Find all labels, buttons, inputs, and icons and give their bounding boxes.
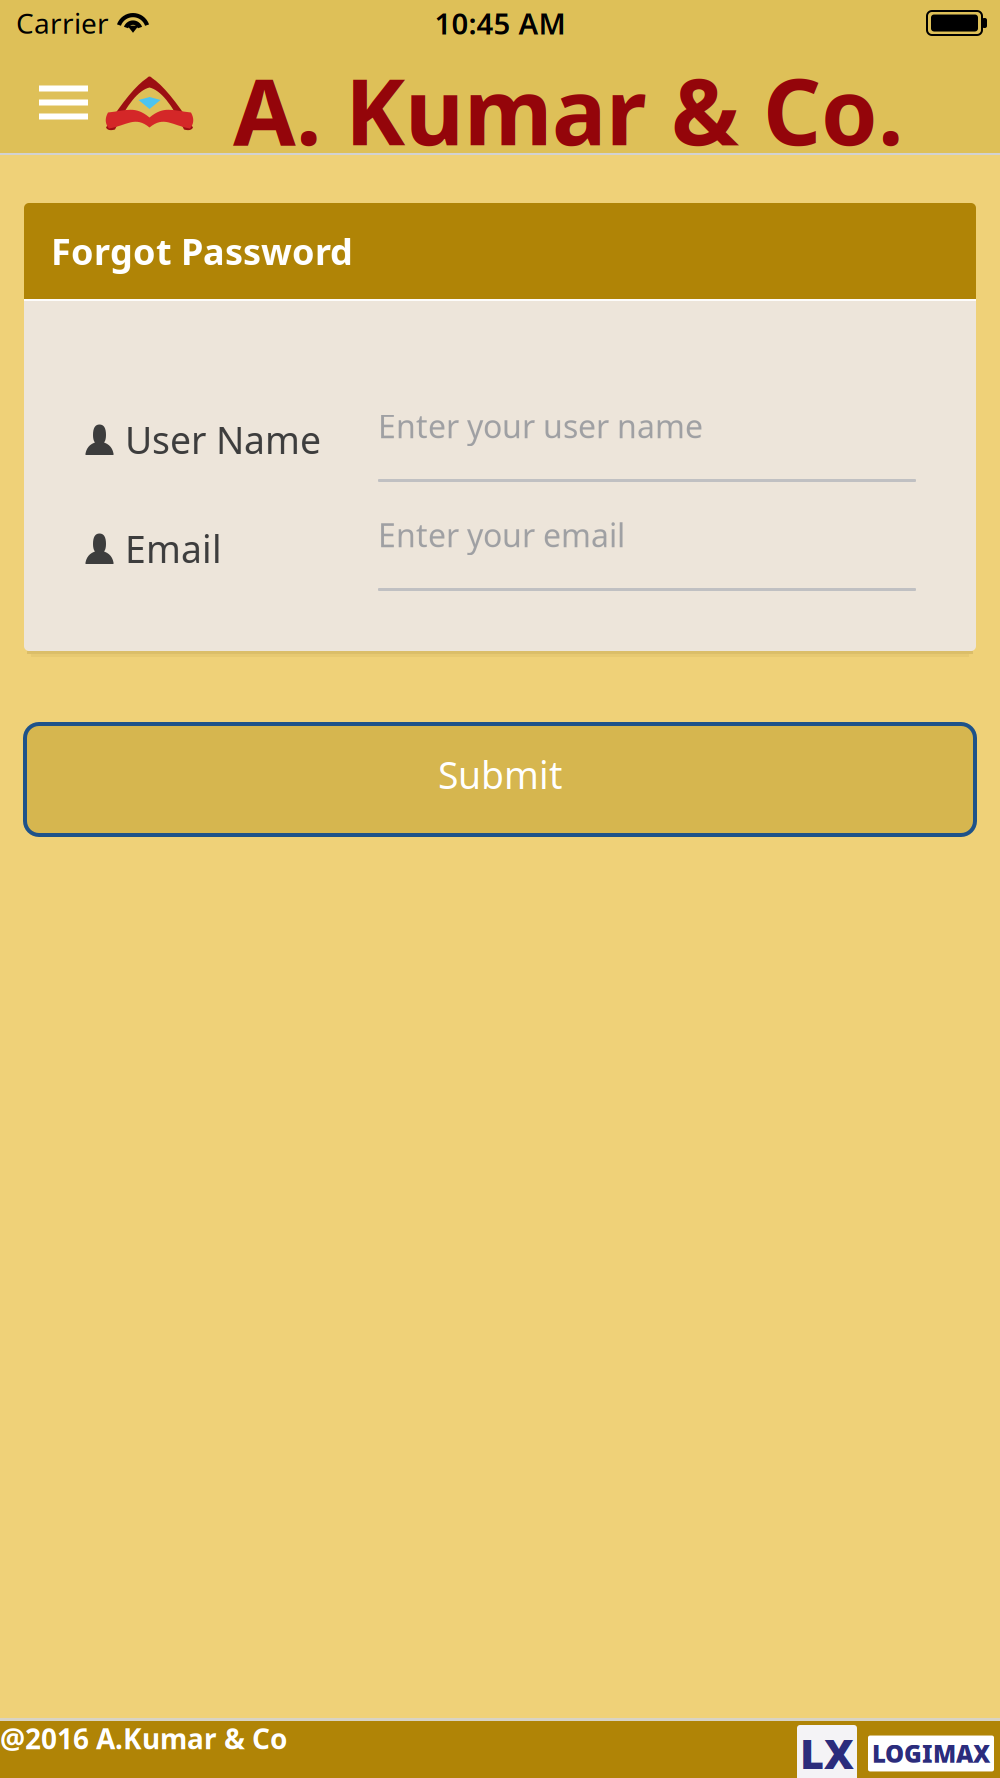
- staticText: Carrier: [16, 4, 109, 42]
- staticText: A. Kumar & Co.: [233, 50, 903, 170]
- staticText: LX: [800, 1726, 854, 1778]
- staticText: Forgot Password: [51, 227, 353, 275]
- button[interactable]: Enter your user name: [378, 373, 916, 482]
- staticText: Submit: [438, 750, 562, 799]
- staticText: Enter your user name: [378, 404, 703, 447]
- staticText: Enter your email: [378, 513, 625, 556]
- staticText: @2016 A.Kumar & Co: [0, 1720, 288, 1757]
- staticText: User Name: [125, 415, 321, 464]
- staticText: Email: [125, 524, 222, 573]
- staticText: 10:45 AM: [434, 3, 565, 42]
- staticText: LOGIMAX: [872, 1738, 990, 1769]
- button[interactable]: Submit: [25, 724, 975, 835]
- button[interactable]: Menu: [0, 58, 96, 153]
- button[interactable]: A. Kumar & Co.: [96, 41, 903, 170]
- button[interactable]: Enter your email: [378, 482, 916, 591]
